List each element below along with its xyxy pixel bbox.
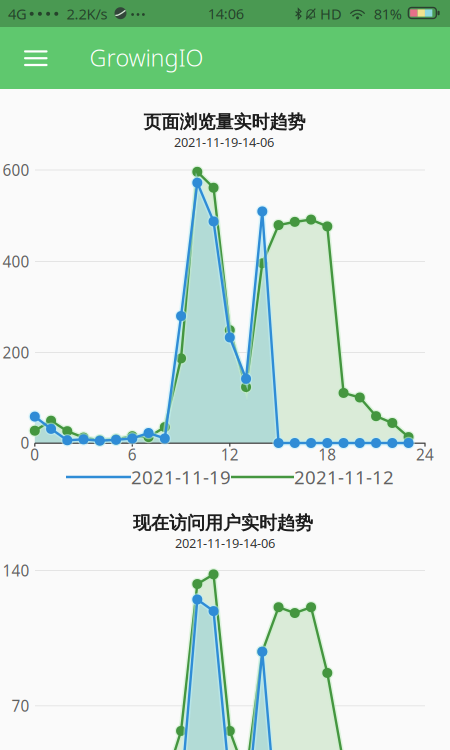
staticText: 24 [416,444,434,465]
staticText: 6 [128,444,137,465]
staticText: 2021-11-12 [294,464,394,490]
staticText: 2021-11-19-14-06 [175,534,275,552]
staticText: 70 [12,695,30,716]
staticText: 2021-11-19-14-06 [174,133,274,151]
staticText: 2.2K/s [66,4,107,24]
staticText: 14:06 [208,3,244,23]
staticText: 18 [318,444,336,465]
staticText: HD [320,4,342,24]
button[interactable]: Open menu [9,27,63,89]
staticText: 12 [221,444,239,465]
staticText: 页面浏览量实时趋势 [144,111,306,133]
staticText: 0 [21,432,30,453]
staticText: 4G [8,4,27,24]
staticText: 81% [374,4,402,24]
staticText: 140 [3,560,30,581]
staticText: 0 [30,444,39,465]
staticText: GrowingIO [89,42,203,73]
staticText: 200 [3,342,30,363]
staticText: 现在访问用户实时趋势 [133,512,313,534]
staticText: 400 [3,251,30,272]
staticText: 2021-11-19 [131,464,231,490]
staticText: 600 [3,160,30,180]
